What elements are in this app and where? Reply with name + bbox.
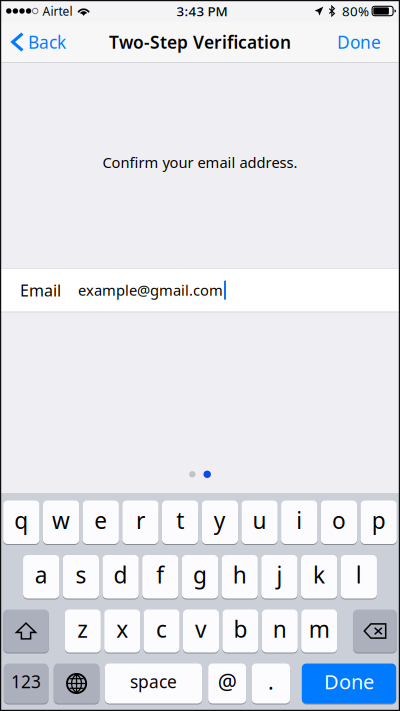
button[interactable]: @: [208, 663, 246, 703]
staticText: j: [276, 560, 282, 590]
staticText: Email: [20, 280, 61, 301]
staticText: b: [233, 614, 247, 644]
button[interactable]: Shift: [3, 609, 49, 652]
staticText: n: [273, 614, 287, 644]
button[interactable]: Back: [0, 22, 76, 62]
staticText: space: [130, 670, 177, 693]
staticText: l: [356, 560, 362, 590]
staticText: @: [218, 667, 237, 696]
staticText: example@gmail.com: [78, 280, 223, 300]
button[interactable]: t: [162, 500, 198, 544]
staticText: m: [309, 614, 330, 644]
button[interactable]: g: [182, 555, 218, 598]
button[interactable]: Next keyboard: [54, 663, 99, 703]
staticText: k: [313, 560, 325, 590]
staticText: z: [77, 614, 88, 644]
button[interactable]: Done: [327, 22, 400, 62]
staticText: g: [193, 560, 207, 590]
staticText: y: [214, 505, 226, 535]
button[interactable]: q: [3, 500, 39, 544]
staticText: f: [156, 560, 164, 590]
button[interactable]: l: [341, 555, 377, 598]
button[interactable]: w: [43, 500, 79, 544]
button[interactable]: x: [104, 609, 140, 652]
staticText: e: [94, 505, 107, 535]
button[interactable]: space: [105, 663, 202, 703]
button[interactable]: u: [241, 500, 278, 544]
staticText: t: [176, 505, 184, 535]
staticText: Done: [324, 668, 374, 695]
staticText: s: [75, 560, 86, 590]
staticText: Back: [28, 30, 66, 53]
button[interactable]: s: [63, 555, 99, 598]
button[interactable]: 123: [4, 663, 48, 703]
button[interactable]: v: [183, 609, 219, 652]
staticText: v: [195, 614, 207, 644]
staticText: Airtel: [42, 3, 72, 19]
button[interactable]: Email: [0, 269, 400, 312]
staticText: Two-Step Verification: [109, 30, 291, 53]
button[interactable]: k: [301, 555, 337, 598]
button[interactable]: r: [122, 500, 159, 544]
staticText: a: [35, 560, 48, 590]
button[interactable]: e: [83, 500, 119, 544]
button[interactable]: n: [262, 609, 298, 652]
staticText: 3:43 PM: [176, 2, 227, 20]
button[interactable]: a: [23, 555, 59, 598]
button[interactable]: p: [360, 500, 397, 544]
staticText: 123: [11, 670, 41, 693]
button[interactable]: Delete: [353, 609, 397, 652]
button[interactable]: o: [321, 500, 357, 544]
button[interactable]: c: [144, 609, 180, 652]
staticText: .: [268, 667, 274, 696]
staticText: x: [116, 614, 128, 644]
button[interactable]: m: [301, 609, 337, 652]
staticText: h: [233, 560, 247, 590]
button[interactable]: i: [281, 500, 317, 544]
staticText: r: [136, 505, 145, 535]
button[interactable]: .: [252, 663, 290, 703]
staticText: Done: [337, 30, 381, 53]
staticText: c: [156, 614, 167, 644]
staticText: q: [14, 505, 28, 535]
staticText: o: [332, 505, 346, 535]
button[interactable]: b: [222, 609, 258, 652]
button[interactable]: d: [102, 555, 139, 598]
staticText: p: [372, 505, 386, 535]
button[interactable]: z: [65, 609, 101, 652]
staticText: Confirm your email address.: [102, 153, 297, 172]
button[interactable]: f: [142, 555, 178, 598]
staticText: u: [252, 505, 266, 535]
button[interactable]: h: [221, 555, 258, 598]
button[interactable]: j: [261, 555, 297, 598]
staticText: w: [52, 505, 70, 535]
staticText: 80%: [342, 2, 369, 20]
button[interactable]: y: [202, 500, 238, 544]
button[interactable]: Done: [302, 663, 396, 703]
staticText: d: [114, 560, 128, 590]
staticText: i: [296, 505, 302, 535]
